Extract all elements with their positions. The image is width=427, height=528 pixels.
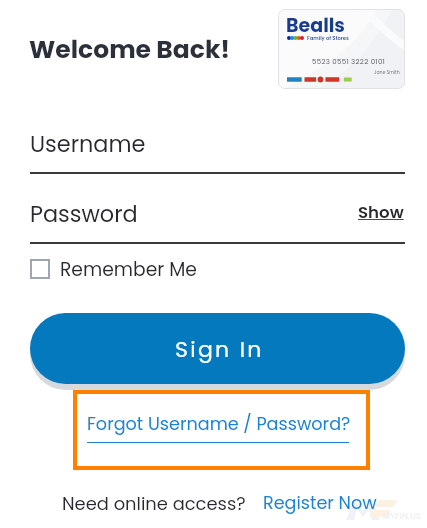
other: Bealls Family of Stores credit card — [278, 9, 405, 89]
staticText: Welcome Back! — [29, 32, 231, 67]
staticText: Bealls — [286, 12, 345, 39]
button[interactable] — [355, 202, 407, 228]
staticText: Jane Smith — [374, 69, 400, 75]
staticText: Family of Stores — [307, 35, 349, 42]
staticText: Remember Me — [60, 256, 197, 282]
staticText: 5523 0551 3222 0101 — [312, 57, 386, 67]
button[interactable] — [30, 130, 405, 174]
button[interactable] — [30, 313, 405, 384]
staticText: Username — [30, 128, 146, 159]
button[interactable] — [262, 492, 380, 516]
staticText: Register Now — [263, 491, 377, 516]
staticText: Sign In — [175, 334, 264, 365]
button[interactable] — [30, 257, 60, 281]
staticText: Forgot Username / Password? — [87, 412, 351, 437]
button[interactable] — [30, 200, 340, 244]
staticText: Password — [30, 198, 138, 229]
staticText: MYFIN.US — [383, 511, 422, 522]
button[interactable] — [87, 412, 351, 444]
staticText: Show — [358, 201, 404, 224]
staticText: Need online access? — [62, 491, 246, 516]
